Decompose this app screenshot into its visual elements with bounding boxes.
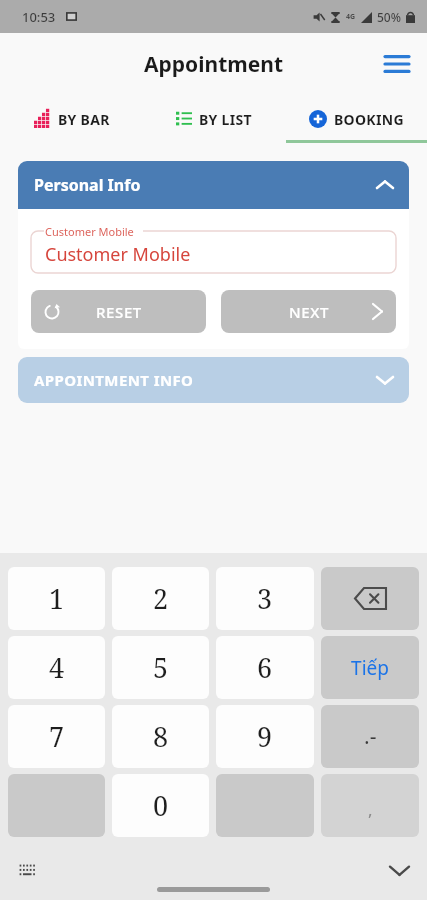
button[interactable]: Backspace [321,567,419,630]
staticText: , [368,798,373,821]
staticText: NEXT [289,302,329,322]
button[interactable]: 9 [216,705,314,768]
button[interactable]: BY BAR [0,95,143,143]
staticText: 3 [257,580,273,617]
button[interactable]: 6 [216,636,314,699]
staticText: Appointment [144,50,284,79]
staticText: 9 [257,718,273,755]
button[interactable]: NEXT [221,290,396,333]
button[interactable]: BOOKING [285,95,427,143]
button[interactable]: Tiếp [321,636,419,699]
staticText: 5 [153,649,169,686]
staticText: 50% [377,9,401,25]
staticText: Personal Info [34,174,377,196]
button[interactable]: Menu [375,42,419,86]
staticText: 0 [153,787,169,824]
button[interactable]: .- [321,705,419,768]
button[interactable]: Keyboard layout [12,855,42,885]
button[interactable]: 4 [8,636,105,699]
button[interactable]: 8 [112,705,209,768]
staticText: BY BAR [58,110,110,129]
staticText: 4 [49,649,65,686]
staticText: RESET [96,302,142,322]
button[interactable]: Hide keyboard [381,852,417,888]
staticText: 4G [346,12,356,22]
button[interactable]: 3 [216,567,314,630]
staticText: 2 [153,580,169,617]
staticText: Tiếp [351,655,389,681]
staticText: 8 [153,718,169,755]
staticText: BY LIST [199,110,252,129]
button[interactable]: 2 [112,567,209,630]
button[interactable]: 5 [112,636,209,699]
staticText: 1 [49,580,65,617]
button[interactable]: Personal Info [18,161,409,209]
staticText: 10:53 [22,8,56,26]
staticText: Customer Mobile [45,224,134,239]
staticText: 6 [257,649,273,686]
staticText: BOOKING [334,110,404,129]
button[interactable]: 0 [112,774,209,837]
button[interactable]: RESET [31,290,206,333]
staticText: .- [364,722,377,751]
staticText: 7 [49,718,65,755]
staticText: APPOINTMENT INFO [34,370,377,390]
staticText: Customer Mobile [45,242,191,267]
button[interactable]: APPOINTMENT INFO [18,357,409,403]
button[interactable]: 7 [8,705,105,768]
button[interactable]: BY LIST [143,95,285,143]
button[interactable]: 1 [8,567,105,630]
